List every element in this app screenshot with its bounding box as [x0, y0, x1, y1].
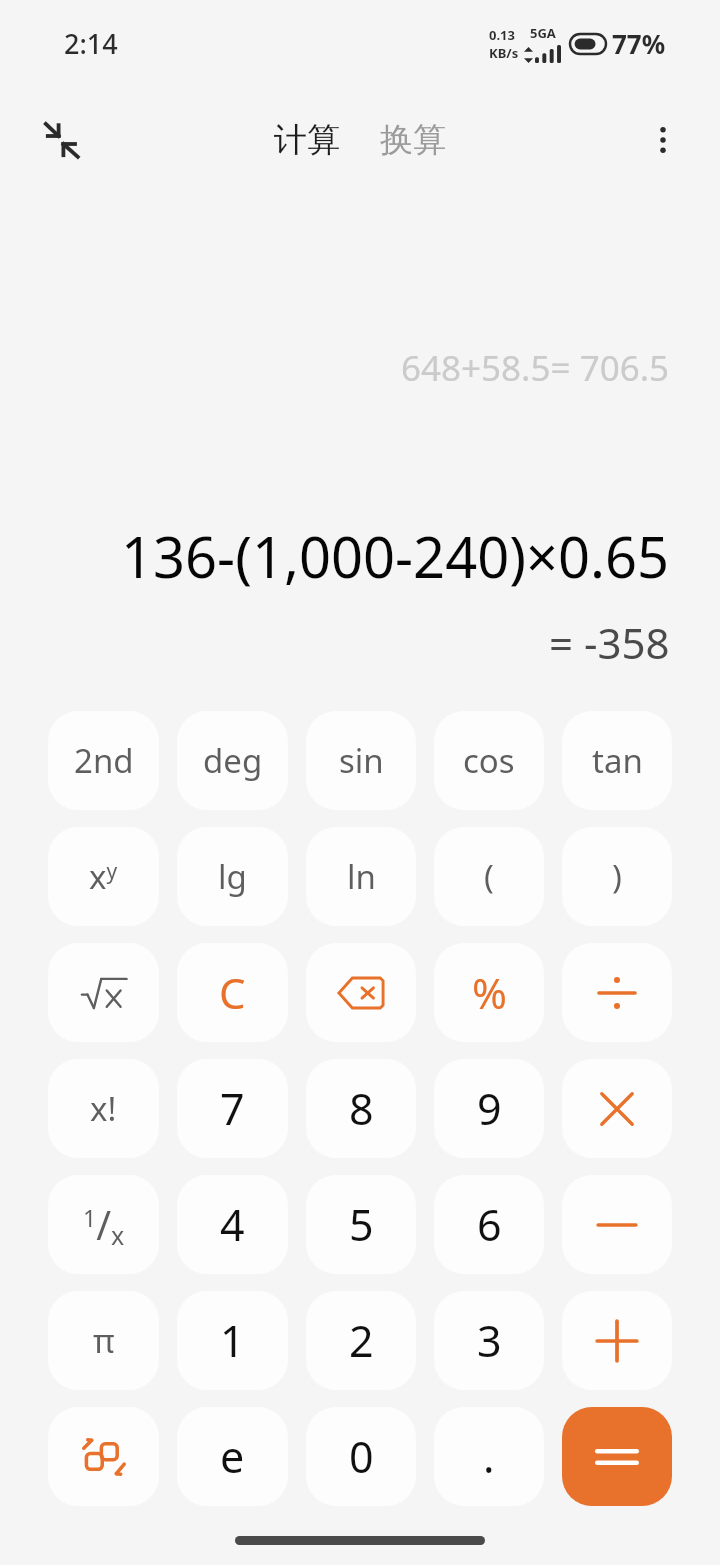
- button[interactable]: C: [177, 943, 288, 1042]
- button[interactable]: 6: [434, 1175, 544, 1274]
- staticText: 0.13: [489, 26, 515, 44]
- button[interactable]: sin: [306, 711, 416, 810]
- staticText: 8: [349, 1079, 374, 1138]
- button[interactable]: ln: [306, 827, 416, 926]
- button[interactable]: 8: [306, 1059, 416, 1158]
- staticText: 2:14: [64, 25, 118, 62]
- button[interactable]: 9: [434, 1059, 544, 1158]
- button[interactable]: 3: [434, 1291, 544, 1390]
- staticText: 2: [349, 1311, 374, 1370]
- button[interactable]: .: [434, 1407, 544, 1506]
- button[interactable]: ): [562, 827, 672, 926]
- staticText: %: [472, 964, 507, 1021]
- staticText: ): [612, 854, 622, 899]
- button[interactable]: lg: [177, 827, 288, 926]
- button[interactable]: Minus: [562, 1175, 672, 1274]
- button[interactable]: More options: [626, 103, 700, 177]
- button[interactable]: 648+58.5= 706.5: [401, 344, 670, 392]
- staticText: = -358: [549, 614, 670, 671]
- staticText: 1: [220, 1311, 245, 1370]
- button[interactable]: Square root: [48, 943, 159, 1042]
- button[interactable]: 4: [177, 1175, 288, 1274]
- button[interactable]: %: [434, 943, 544, 1042]
- staticText: KB/s: [489, 44, 519, 62]
- staticText: 0: [349, 1427, 374, 1486]
- button[interactable]: e: [177, 1407, 288, 1506]
- button[interactable]: 1: [177, 1291, 288, 1390]
- staticText: cos: [463, 738, 515, 783]
- staticText: 7: [220, 1079, 245, 1138]
- staticText: xy: [89, 854, 118, 899]
- button[interactable]: Reciprocal: [48, 1175, 159, 1274]
- button[interactable]: 0: [306, 1407, 416, 1506]
- button[interactable]: (: [434, 827, 544, 926]
- staticText: 5GA: [530, 24, 556, 42]
- staticText: (: [484, 854, 494, 899]
- button[interactable]: 5: [306, 1175, 416, 1274]
- button[interactable]: 2: [306, 1291, 416, 1390]
- staticText: 计算: [274, 119, 340, 161]
- button[interactable]: Collapse: [24, 103, 98, 177]
- button[interactable]: xy: [48, 827, 159, 926]
- staticText: 4: [220, 1195, 245, 1254]
- staticText: 3: [477, 1311, 502, 1370]
- button[interactable]: Equals: [562, 1407, 672, 1506]
- button[interactable]: cos: [434, 711, 544, 810]
- staticText: 136-(1,000-240)×0.65: [121, 518, 670, 594]
- staticText: .: [483, 1427, 495, 1486]
- button[interactable]: Plus: [562, 1291, 672, 1390]
- staticText: π: [93, 1318, 115, 1363]
- staticText: 6: [477, 1195, 502, 1254]
- button[interactable]: 换算: [372, 111, 454, 169]
- staticText: e: [220, 1427, 245, 1486]
- staticText: ln: [347, 854, 376, 899]
- staticText: 5: [349, 1195, 374, 1254]
- button[interactable]: Divide: [562, 943, 672, 1042]
- staticText: 2nd: [74, 738, 134, 783]
- button[interactable]: Multiply: [562, 1059, 672, 1158]
- staticText: 77%: [612, 26, 666, 61]
- button[interactable]: x!: [48, 1059, 159, 1158]
- button[interactable]: Convert: [48, 1407, 159, 1506]
- button[interactable]: Delete: [306, 943, 416, 1042]
- staticText: C: [219, 964, 246, 1021]
- staticText: sin: [339, 738, 384, 783]
- button[interactable]: deg: [177, 711, 288, 810]
- button[interactable]: tan: [562, 711, 672, 810]
- staticText: deg: [203, 738, 263, 783]
- staticText: lg: [218, 854, 247, 899]
- button[interactable]: 2nd: [48, 711, 159, 810]
- staticText: 换算: [380, 119, 446, 161]
- staticText: 648+58.5= 706.5: [401, 344, 670, 392]
- button[interactable]: π: [48, 1291, 159, 1390]
- staticText: x!: [90, 1086, 117, 1131]
- button[interactable]: 7: [177, 1059, 288, 1158]
- staticText: tan: [592, 738, 643, 783]
- button[interactable]: 计算: [266, 111, 348, 169]
- staticText: 9: [477, 1079, 502, 1138]
- staticText: 1/x: [83, 1197, 125, 1252]
